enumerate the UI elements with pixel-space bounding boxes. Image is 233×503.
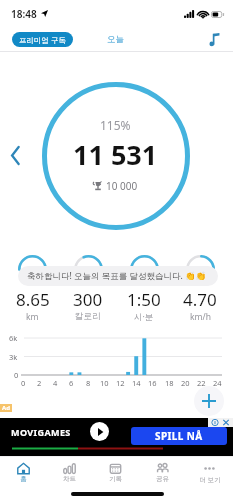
staticText: 홈 xyxy=(20,475,27,483)
staticText: 1:50 xyxy=(127,288,161,311)
staticText: MOVIGAMES xyxy=(11,426,71,438)
staticText: 축하합니다! 오늘의 목표를 달성했습니다. 👏👏 xyxy=(27,270,207,282)
button[interactable]: 공유 xyxy=(139,457,186,483)
staticText: 차트 xyxy=(63,475,76,483)
staticText: 시·분 xyxy=(134,311,154,323)
staticText: 22 xyxy=(197,378,206,388)
staticText: 0 xyxy=(14,370,19,380)
staticText: 11 531 xyxy=(73,136,158,173)
button[interactable]: 8.65 xyxy=(5,255,60,323)
staticText: 4 xyxy=(53,378,58,388)
button[interactable]: Previous day xyxy=(3,143,27,167)
button[interactable]: 프리미엄 구독 xyxy=(12,32,73,47)
staticText: 10 xyxy=(100,378,109,388)
staticText: 프리미엄 구독 xyxy=(19,35,66,45)
button[interactable]: 300 xyxy=(60,255,116,322)
button[interactable]: SPILL NÅ xyxy=(131,427,227,445)
staticText: 기록 xyxy=(109,475,122,483)
staticText: 0 xyxy=(21,378,26,388)
button[interactable]: Music xyxy=(199,27,229,51)
staticText: 오늘 xyxy=(107,34,124,45)
staticText: km/h xyxy=(190,311,211,323)
button[interactable]: 오늘 xyxy=(102,31,129,48)
staticText: 10 000 xyxy=(106,179,138,193)
staticText: 14 xyxy=(132,378,141,388)
staticText: km xyxy=(26,311,39,323)
staticText: 20 xyxy=(181,378,190,388)
button[interactable]: MOVIGAMES xyxy=(0,418,233,456)
button[interactable]: 기록 xyxy=(92,457,139,483)
staticText: 300 xyxy=(73,288,103,311)
button[interactable]: 축하합니다! 오늘의 목표를 달성했습니다. 👏👏 xyxy=(18,266,218,286)
staticText: 6k xyxy=(9,333,18,343)
staticText: 더 보기 xyxy=(199,475,221,484)
button[interactable]: Add xyxy=(194,386,224,416)
button[interactable]: 1:50 xyxy=(116,255,172,323)
staticText: 공유 xyxy=(156,475,169,483)
button[interactable]: 홈 xyxy=(0,457,46,483)
button[interactable]: 더 보기 xyxy=(186,457,233,484)
staticText: 24 xyxy=(213,378,222,388)
staticText: 18:48 xyxy=(11,7,37,21)
staticText: 8.65 xyxy=(16,288,50,311)
staticText: 6 xyxy=(69,378,74,388)
button[interactable]: 4.70 xyxy=(172,255,228,323)
staticText: 18 xyxy=(165,378,174,388)
staticText: 4.70 xyxy=(183,288,217,311)
staticText: 8 xyxy=(86,378,91,388)
button[interactable]: Ad choices xyxy=(208,418,233,427)
staticText: 12 xyxy=(116,378,125,388)
button[interactable]: 차트 xyxy=(46,457,92,483)
staticText: Ad xyxy=(2,404,10,412)
staticText: SPILL NÅ xyxy=(155,429,203,443)
staticText: 3k xyxy=(9,352,18,362)
staticText: 16 xyxy=(148,378,157,388)
staticText: 115% xyxy=(100,117,131,133)
staticText: 칼로리 xyxy=(75,311,101,322)
staticText: 2 xyxy=(37,378,42,388)
